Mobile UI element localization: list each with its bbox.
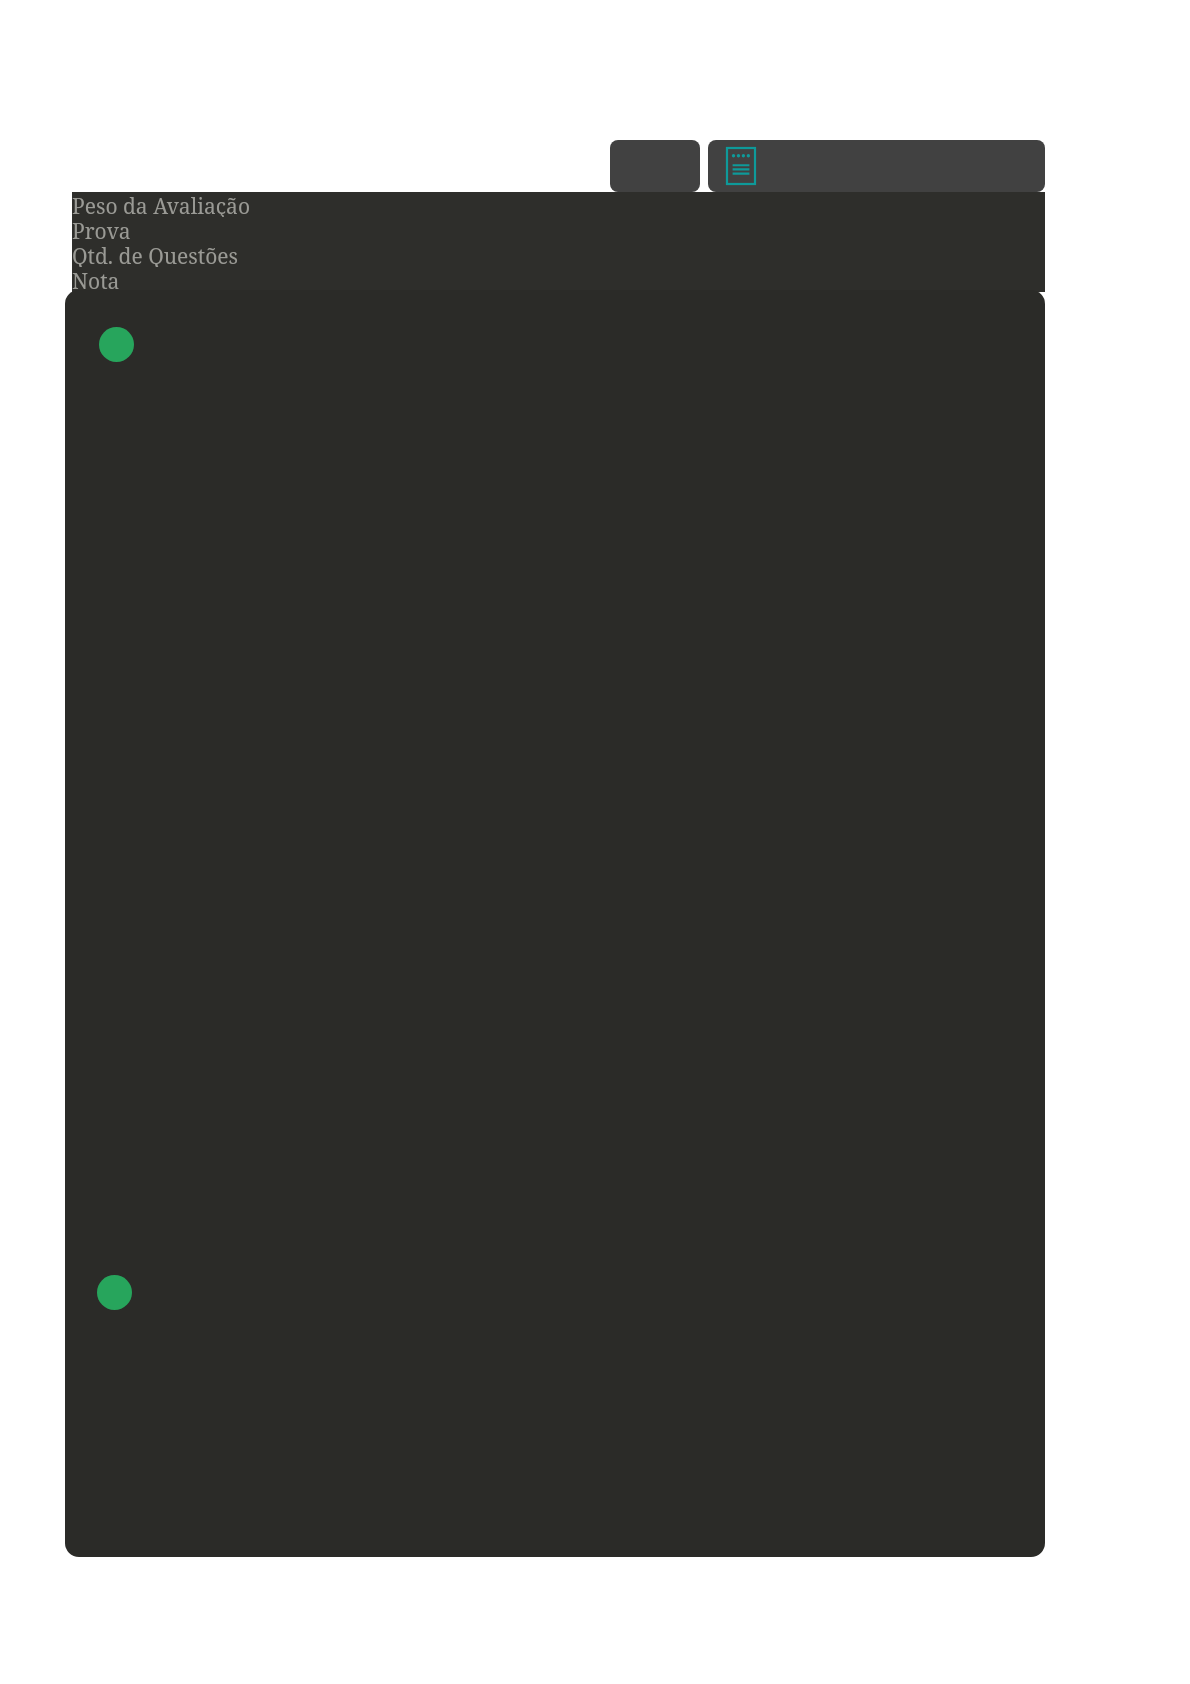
staticText: Qtd. de Questões [72, 242, 239, 267]
staticText: Prova [72, 217, 131, 242]
staticText: Peso da Avaliação [72, 192, 250, 217]
staticText: Nota [72, 267, 120, 292]
button[interactable]: Status ativo [97, 1275, 132, 1310]
button[interactable]: Relatório [724, 146, 758, 186]
button[interactable]: Status ativo [99, 327, 134, 362]
button[interactable]: Voltar [610, 140, 700, 192]
